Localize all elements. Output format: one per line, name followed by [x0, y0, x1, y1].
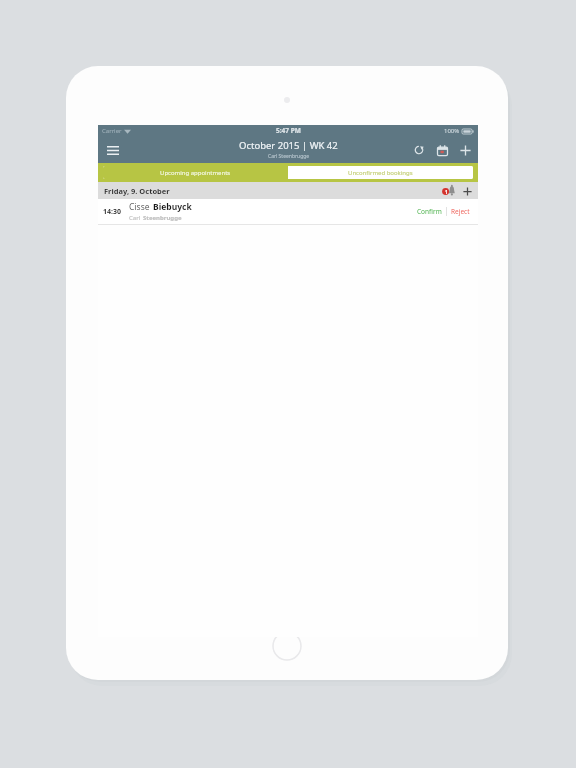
button[interactable]: Upcoming appointments: [103, 166, 288, 179]
staticText: Upcoming appointments: [160, 169, 231, 177]
staticText: Unconfirmed bookings: [348, 169, 413, 177]
staticText: 14:30: [103, 207, 121, 217]
button[interactable]: Add: [456, 141, 474, 159]
staticText: Friday, 9. October: [104, 186, 170, 196]
button[interactable]: Notifications: [441, 183, 458, 198]
staticText: 100%: [444, 127, 460, 135]
staticText: 5:47 PM: [276, 126, 301, 135]
staticText: Steenbrugge: [143, 214, 182, 222]
button[interactable]: Confirm: [413, 204, 446, 219]
button[interactable]: Add appointment: [460, 184, 474, 198]
staticText: Cisse: [129, 201, 150, 213]
button[interactable]: Unconfirmed bookings: [288, 166, 473, 179]
staticText: 1: [445, 189, 448, 195]
button[interactable]: Menu: [103, 140, 123, 160]
staticText: Biebuyck: [153, 201, 192, 213]
staticText: Carl: [129, 214, 141, 222]
button[interactable]: Reject: [447, 204, 474, 219]
button[interactable]: Refresh: [410, 141, 428, 159]
staticText: Carrier: [102, 127, 122, 135]
staticText: Confirm: [417, 207, 442, 216]
staticText: Carl Steenbrugge: [268, 153, 310, 160]
staticText: Reject: [451, 207, 470, 216]
button[interactable]: Calendar: [433, 141, 451, 159]
staticText: October 2015 | WK 42: [239, 139, 338, 152]
button[interactable]: 14:30: [98, 199, 478, 224]
